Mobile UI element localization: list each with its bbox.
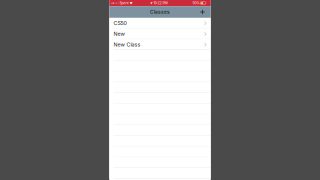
- staticText: 50%: [193, 1, 200, 5]
- button[interactable]: Add class: [199, 9, 206, 15]
- button[interactable]: New: [109, 28, 211, 39]
- staticText: CS50: [113, 20, 126, 26]
- staticText: Classes: [150, 9, 170, 15]
- staticText: New: [113, 31, 124, 37]
- staticText: 10:22 PM: [154, 1, 168, 5]
- button[interactable]: CS50: [109, 18, 211, 28]
- staticText: New Class: [113, 41, 140, 48]
- button[interactable]: New Class: [109, 39, 211, 50]
- staticText: Sprint: [119, 1, 128, 5]
